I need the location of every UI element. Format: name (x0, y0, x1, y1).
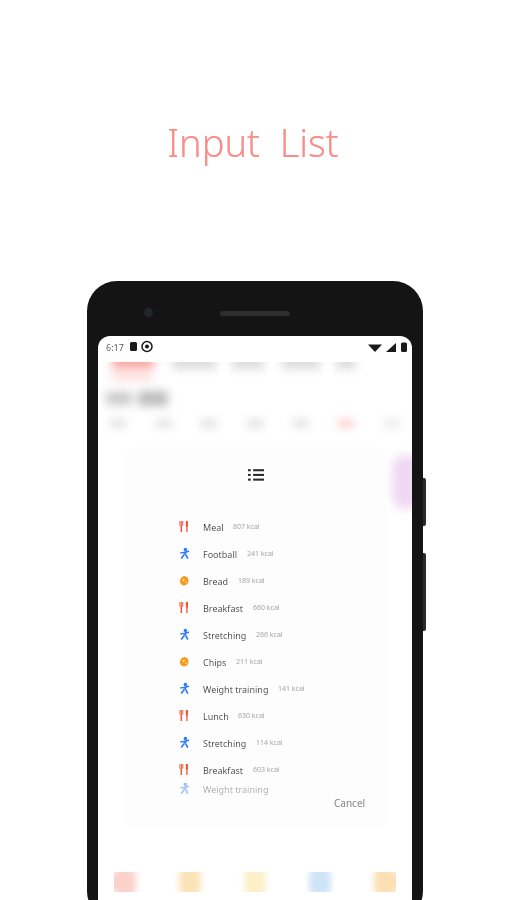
staticText: 660 kcal (253, 603, 280, 613)
button[interactable]: Meal (125, 513, 386, 540)
other: Calendar (112, 362, 154, 369)
staticText: Breakfast (203, 764, 244, 776)
button[interactable]: Bread (125, 567, 386, 594)
staticText: Lunch (203, 710, 229, 722)
button[interactable]: Input list (125, 463, 386, 489)
other: Balance (282, 362, 320, 369)
button[interactable]: Stretching (125, 729, 386, 756)
staticText: 114 kcal (256, 738, 283, 748)
button[interactable]: Cancel (334, 796, 386, 829)
staticText: 630 kcal (238, 711, 265, 721)
staticText: 211 kcal (236, 657, 263, 667)
other: Weight (232, 362, 264, 369)
staticText: Chips (203, 656, 227, 668)
staticText: 807 kcal (233, 522, 260, 532)
staticText: Stretching (203, 737, 247, 749)
button[interactable]: Lunch (125, 702, 386, 729)
staticText: Cancel (334, 796, 366, 807)
button[interactable]: Weight training (125, 675, 386, 702)
staticText: Meal (203, 521, 224, 533)
button[interactable]: Breakfast (125, 756, 386, 783)
staticText: 603 kcal (253, 765, 280, 775)
staticText: Breakfast (203, 602, 244, 614)
button[interactable]: Stretching (125, 621, 386, 648)
staticText: Bread (203, 575, 229, 587)
staticText: 6:17 (106, 341, 124, 353)
staticText: Weight training (203, 683, 269, 695)
staticText: 189 kcal (238, 576, 265, 586)
button[interactable]: Football (125, 540, 386, 567)
staticText: Input List (167, 116, 339, 168)
staticText: 141 kcal (278, 684, 305, 694)
button[interactable]: Breakfast (125, 594, 386, 621)
staticText: Football (203, 548, 238, 560)
staticText: 241 kcal (247, 549, 274, 559)
button[interactable]: Chips (125, 648, 386, 675)
staticText: 266 kcal (256, 630, 283, 640)
other: Nutrition (172, 362, 216, 369)
staticText: Stretching (203, 629, 247, 641)
other: Diet (336, 362, 356, 369)
staticText: Weight training (203, 783, 269, 795)
